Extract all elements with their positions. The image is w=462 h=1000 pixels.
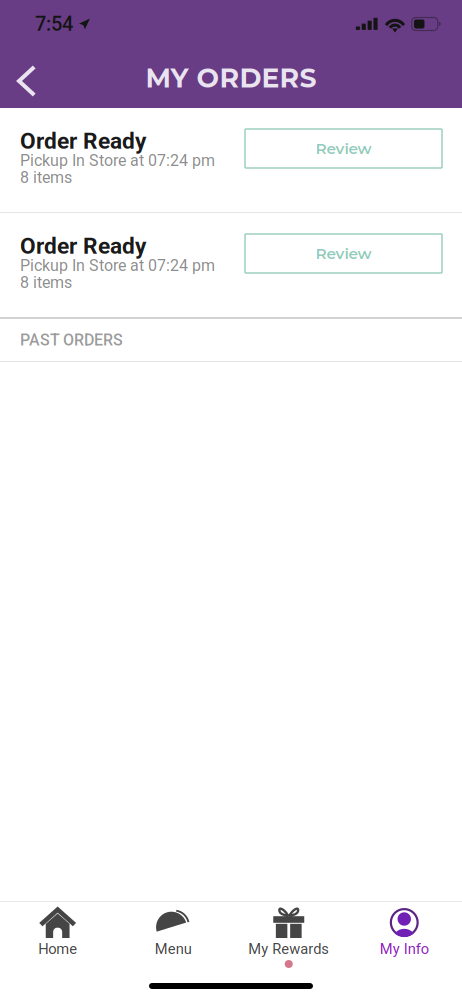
button[interactable]: My Info	[346, 900, 462, 976]
staticText: My Info	[380, 940, 429, 958]
staticText: PAST ORDERS	[20, 331, 123, 349]
staticText: 8 items	[20, 273, 72, 292]
staticText: Review	[315, 139, 371, 158]
staticText: Order Ready	[20, 233, 146, 259]
button[interactable]: Menu	[115, 900, 231, 976]
button[interactable]: My Rewards	[231, 900, 346, 976]
staticText: 8 items	[20, 168, 72, 187]
staticText: Review	[315, 244, 371, 263]
button[interactable]: Home	[0, 900, 115, 976]
staticText: 7:54	[35, 12, 73, 36]
staticText: Pickup In Store at 07:24 pm	[20, 256, 215, 275]
staticText: Pickup In Store at 07:24 pm	[20, 151, 215, 170]
staticText: Menu	[155, 940, 192, 958]
staticText: My Rewards	[248, 940, 329, 958]
button[interactable]: Review	[245, 108, 442, 168]
button[interactable]: Review	[245, 213, 442, 273]
staticText: Order Ready	[20, 128, 146, 154]
staticText: Home	[38, 940, 77, 958]
staticText: MY ORDERS	[145, 62, 316, 94]
button[interactable]: Back	[0, 48, 54, 108]
